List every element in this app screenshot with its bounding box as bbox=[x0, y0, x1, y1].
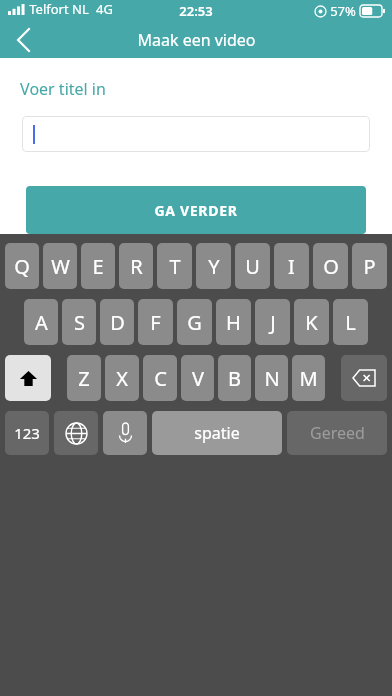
staticText: S bbox=[74, 309, 85, 336]
button[interactable]: A bbox=[24, 299, 58, 345]
button[interactable]: Shift bbox=[5, 355, 51, 401]
button[interactable]: spatie bbox=[152, 411, 282, 455]
button[interactable]: Voice input bbox=[103, 411, 147, 455]
button[interactable]: Gereed bbox=[287, 411, 387, 455]
staticText: 57% bbox=[330, 2, 356, 20]
staticText: A bbox=[35, 309, 48, 336]
staticText: R bbox=[130, 253, 143, 280]
staticText: GA VERDER bbox=[154, 201, 238, 220]
staticText: B bbox=[228, 365, 241, 392]
staticText: Y bbox=[208, 253, 220, 280]
button[interactable]: F bbox=[138, 299, 173, 345]
button[interactable]: E bbox=[81, 243, 115, 289]
staticText: Gereed bbox=[310, 422, 365, 444]
button[interactable]: D bbox=[100, 299, 134, 345]
staticText: spatie bbox=[194, 422, 240, 444]
staticText: F bbox=[150, 309, 161, 336]
button[interactable]: Backspace bbox=[341, 355, 387, 401]
button[interactable]: Z bbox=[67, 355, 101, 401]
staticText: W bbox=[51, 253, 70, 280]
staticText: E bbox=[92, 253, 104, 280]
button[interactable]: W bbox=[43, 243, 77, 289]
button[interactable]: G bbox=[177, 299, 212, 345]
staticText: O bbox=[323, 253, 339, 280]
button[interactable]: S bbox=[62, 299, 96, 345]
staticText: U bbox=[245, 253, 260, 280]
staticText: C bbox=[154, 365, 167, 392]
button[interactable]: Q bbox=[5, 243, 39, 289]
staticText: Voer titel in bbox=[20, 78, 106, 100]
staticText: M bbox=[299, 365, 318, 392]
staticText: I bbox=[288, 253, 295, 280]
staticText: G bbox=[187, 309, 202, 336]
staticText: J bbox=[270, 309, 276, 336]
staticText: V bbox=[192, 365, 204, 392]
button[interactable]: C bbox=[143, 355, 177, 401]
staticText: 123 bbox=[14, 423, 40, 443]
button[interactable]: M bbox=[292, 355, 325, 401]
staticText: Telfort NL bbox=[29, 0, 89, 18]
button[interactable]: 123 bbox=[5, 411, 49, 455]
staticText: X bbox=[116, 365, 128, 392]
button[interactable]: Y bbox=[196, 243, 231, 289]
button[interactable]: N bbox=[255, 355, 288, 401]
staticText: L bbox=[345, 309, 356, 336]
button[interactable]: O bbox=[313, 243, 348, 289]
button[interactable]: U bbox=[235, 243, 270, 289]
button[interactable]: V bbox=[181, 355, 214, 401]
button[interactable]: K bbox=[294, 299, 329, 345]
button[interactable]: P bbox=[352, 243, 387, 289]
button[interactable]: GA VERDER bbox=[26, 186, 366, 234]
button[interactable]: Change keyboard language bbox=[54, 411, 98, 455]
button[interactable]: B bbox=[218, 355, 251, 401]
button[interactable]: J bbox=[255, 299, 290, 345]
staticText: 22:53 bbox=[179, 2, 213, 20]
staticText: D bbox=[110, 309, 125, 336]
button[interactable]: I bbox=[274, 243, 309, 289]
staticText: 4G bbox=[96, 0, 113, 18]
staticText: Maak een video bbox=[137, 29, 256, 51]
staticText: Q bbox=[14, 253, 30, 280]
staticText: P bbox=[363, 253, 376, 280]
staticText: Z bbox=[78, 365, 90, 392]
staticText: K bbox=[305, 309, 318, 336]
button[interactable]: L bbox=[333, 299, 368, 345]
button[interactable]: Back bbox=[0, 22, 46, 58]
staticText: N bbox=[264, 365, 280, 392]
button[interactable] bbox=[22, 116, 370, 152]
button[interactable]: H bbox=[216, 299, 251, 345]
button[interactable]: R bbox=[119, 243, 153, 289]
button[interactable]: T bbox=[157, 243, 192, 289]
button[interactable]: X bbox=[105, 355, 139, 401]
staticText: T bbox=[169, 253, 181, 280]
staticText: H bbox=[226, 309, 241, 336]
